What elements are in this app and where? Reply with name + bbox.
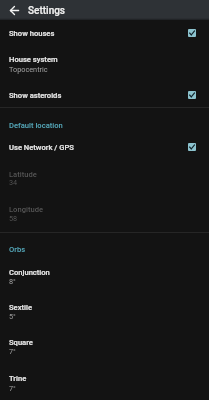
button[interactable]: Longitude bbox=[0, 195, 209, 230]
staticText: 34 bbox=[9, 178, 18, 187]
button[interactable]: Trine bbox=[0, 364, 209, 400]
staticText: Default location bbox=[9, 121, 63, 130]
button[interactable]: Sextile bbox=[0, 293, 209, 328]
staticText: 7° bbox=[9, 347, 16, 356]
button[interactable]: Toggle bbox=[188, 91, 196, 99]
button[interactable]: House system bbox=[0, 46, 209, 76]
staticText: Latitude bbox=[9, 170, 37, 179]
staticText: 5° bbox=[9, 312, 16, 321]
staticText: Trine bbox=[9, 374, 27, 383]
staticText: Conjunction bbox=[9, 268, 50, 277]
staticText: Use Network / GPS bbox=[9, 143, 74, 152]
staticText: Sextile bbox=[9, 303, 32, 312]
button[interactable]: Conjunction bbox=[0, 258, 209, 293]
button[interactable]: Latitude bbox=[0, 160, 209, 195]
button[interactable]: Show houses bbox=[0, 20, 209, 46]
staticText: 8° bbox=[9, 277, 16, 286]
staticText: 7° bbox=[9, 384, 16, 393]
button[interactable]: Toggle bbox=[188, 143, 196, 151]
staticText: House system bbox=[9, 55, 58, 64]
staticText: Show asteroids bbox=[9, 91, 62, 100]
staticText: Show houses bbox=[9, 29, 55, 38]
button[interactable]: Show asteroids bbox=[0, 82, 209, 107]
button[interactable]: Use Network / GPS bbox=[0, 133, 209, 160]
button[interactable]: Toggle bbox=[188, 29, 196, 37]
staticText: Longitude bbox=[9, 205, 44, 214]
staticText: 58 bbox=[9, 214, 18, 223]
staticText: Topocentric bbox=[9, 65, 48, 74]
button[interactable]: Back bbox=[4, 0, 24, 20]
staticText: Orbs bbox=[9, 245, 26, 254]
button[interactable]: Square bbox=[0, 328, 209, 364]
staticText: Settings bbox=[28, 5, 66, 17]
staticText: Square bbox=[9, 338, 33, 347]
